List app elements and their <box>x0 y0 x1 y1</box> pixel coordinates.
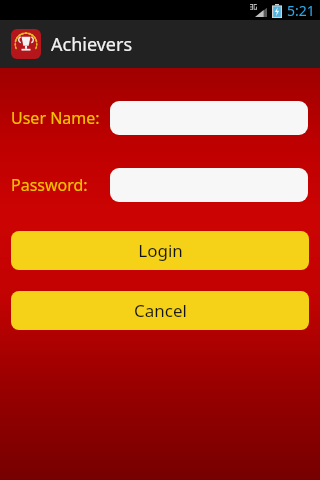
button[interactable]: Login <box>11 231 309 270</box>
staticText: Cancel <box>134 299 187 322</box>
staticText: 5:21 <box>287 1 315 20</box>
other: Achievers app icon <box>11 29 41 59</box>
button[interactable] <box>110 168 308 202</box>
button[interactable]: Cancel <box>11 291 309 330</box>
staticText: Achievers <box>51 32 133 57</box>
button[interactable] <box>110 101 308 135</box>
staticText: User Name: <box>11 107 100 129</box>
staticText: Password: <box>11 174 88 196</box>
staticText: Login <box>138 239 183 262</box>
